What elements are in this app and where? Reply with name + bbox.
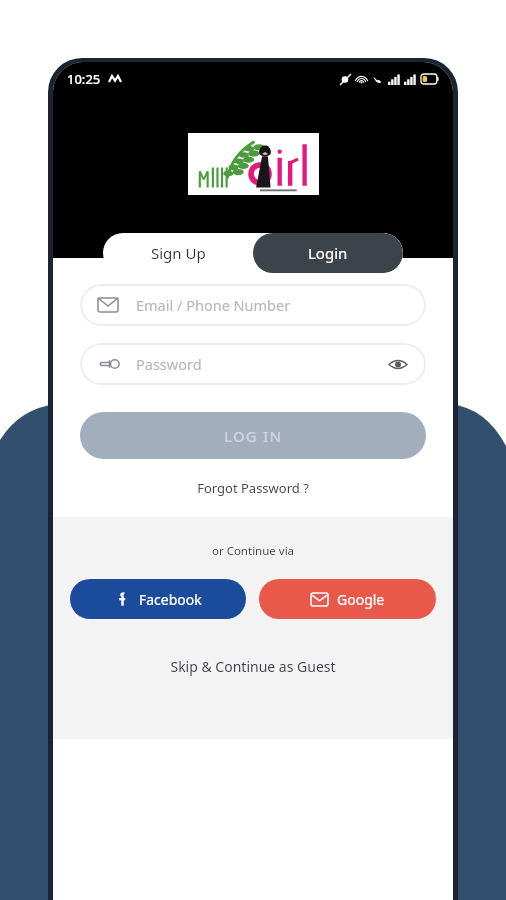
button[interactable]: Show password [388, 354, 408, 374]
button[interactable]: Google [259, 579, 436, 619]
button[interactable]: Skip & Continue as Guest [53, 657, 453, 676]
staticText: LOG IN [224, 426, 283, 446]
staticText: 10:25 [67, 70, 101, 88]
button[interactable]: Email / Phone Number [80, 284, 426, 326]
button[interactable]: Facebook [70, 579, 246, 619]
staticText: Login [308, 243, 348, 263]
button[interactable]: Login [253, 233, 403, 273]
button[interactable]: Forgot Password ? [53, 479, 453, 497]
button[interactable]: Password [80, 343, 426, 385]
staticText: Facebook [139, 590, 202, 609]
button[interactable]: LOG IN [80, 412, 426, 459]
staticText: Password [136, 354, 388, 374]
staticText: Sign Up [151, 243, 206, 263]
staticText: Google [337, 590, 385, 609]
staticText: or Continue via [53, 543, 453, 559]
button[interactable]: Sign Up [103, 233, 253, 273]
staticText: Email / Phone Number [136, 295, 291, 315]
